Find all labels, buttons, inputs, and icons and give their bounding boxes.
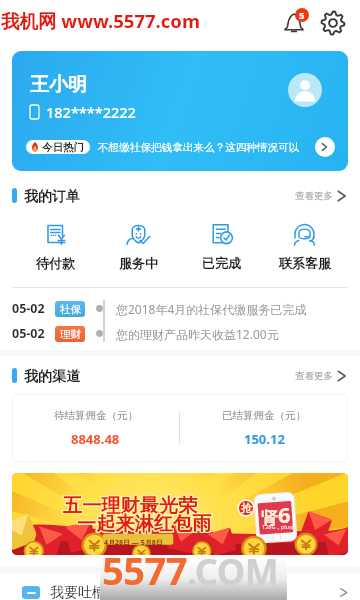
- button[interactable]: Notifications: [280, 9, 308, 37]
- staticText: 您2018年4月的社保代缴服务已完成: [116, 301, 307, 317]
- staticText: 已完成: [202, 255, 241, 271]
- staticText: 五一理财最光荣: [64, 494, 199, 518]
- button[interactable]: 05-02: [12, 321, 360, 346]
- staticText: 一起来淋红包雨: [77, 513, 212, 537]
- staticText: 今日热门: [42, 141, 84, 154]
- staticText: 肾: [261, 508, 278, 529]
- button[interactable]: 待结算佣金（元）: [12, 409, 179, 448]
- staticText: 五一理财最光荣: [64, 495, 199, 519]
- staticText: 一起来淋红包雨: [76, 511, 211, 535]
- staticText: 150.12: [244, 430, 285, 448]
- staticText: 您的理财产品昨天收益12.00元: [116, 326, 279, 342]
- staticText: 五一理财最光荣: [63, 493, 198, 517]
- button[interactable]: 服务中: [97, 221, 180, 273]
- staticText: 一起来淋红包雨: [77, 511, 212, 535]
- button[interactable]: 已结算佣金（元）: [180, 409, 348, 448]
- staticText: 理财: [60, 328, 81, 341]
- staticText: 我的订单: [24, 188, 80, 203]
- staticText: 五一理财最光荣: [63, 495, 198, 519]
- staticText: .COM: [187, 547, 279, 596]
- staticText: 05-02: [12, 300, 45, 317]
- staticText: 查看更多: [295, 370, 333, 382]
- staticText: 联系客服: [279, 255, 331, 271]
- staticText: 五一理财最光荣: [62, 495, 197, 519]
- button[interactable]: More: [315, 137, 335, 157]
- staticText: 我机网 www.5577.com: [1, 8, 200, 33]
- staticText: 不想缴社保把钱拿出来么？这四种情况可以: [98, 141, 300, 154]
- staticText: 抢: [241, 501, 252, 515]
- staticText: 已结算佣金（元）: [222, 409, 306, 422]
- button[interactable]: 联系客服: [263, 221, 346, 273]
- staticText: 服务中: [119, 255, 158, 271]
- button[interactable]: 05-02: [12, 296, 360, 321]
- staticText: 五一理财最光荣: [64, 493, 199, 517]
- button[interactable]: 待付款: [13, 221, 97, 273]
- button[interactable]: 查看更多: [295, 369, 347, 383]
- button[interactable]: 查看更多: [295, 189, 347, 203]
- staticText: 4月28日 — 5月8日: [104, 538, 163, 548]
- staticText: 5: [299, 9, 305, 22]
- staticText: 128G，plus版: [262, 523, 298, 531]
- staticText: 王小明: [30, 73, 87, 97]
- staticText: 五一理财最光荣: [63, 494, 198, 518]
- staticText: 查看更多: [295, 190, 333, 202]
- staticText: 5577: [102, 544, 187, 596]
- staticText: 一起来淋红包雨: [76, 513, 211, 537]
- staticText: 一起来淋红包雨: [78, 512, 213, 536]
- staticText: 待付款: [36, 255, 75, 271]
- staticText: 五一理财最光荣: [62, 494, 197, 518]
- staticText: 182****2222: [46, 102, 136, 122]
- staticText: 我的渠道: [24, 368, 80, 383]
- staticText: 待结算佣金（元）: [54, 409, 138, 422]
- staticText: 一起来淋红包雨: [78, 511, 213, 535]
- staticText: 6: [278, 499, 291, 529]
- staticText: 五一理财最光荣: [62, 493, 197, 517]
- staticText: 一起来淋红包雨: [77, 512, 212, 536]
- button[interactable]: Settings: [320, 10, 346, 36]
- button[interactable]: 五一理财最光荣 一起来淋红包雨 广告: [12, 473, 348, 555]
- staticText: 我要吐槽: [50, 584, 106, 600]
- staticText: 一起来淋红包雨: [78, 513, 213, 537]
- staticText: 一起来淋红包雨: [76, 512, 211, 536]
- staticText: 8848.48: [71, 430, 120, 448]
- staticText: 社保: [60, 303, 81, 316]
- button[interactable]: 我要吐槽: [22, 584, 348, 600]
- staticText: 05-02: [12, 325, 45, 342]
- button[interactable]: 已完成: [180, 221, 263, 273]
